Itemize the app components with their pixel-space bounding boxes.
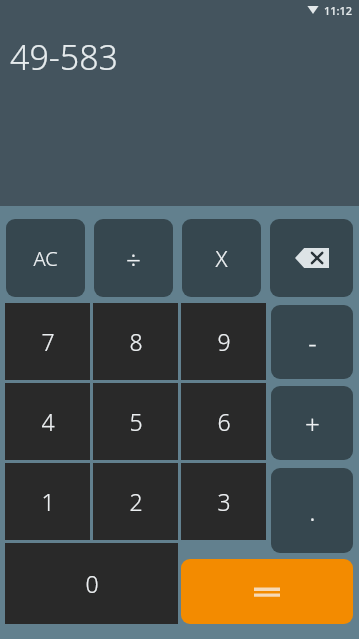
staticText: X — [215, 243, 228, 273]
staticText: 49-583 — [10, 34, 119, 80]
staticText: 6 — [217, 406, 231, 437]
button[interactable]: ÷ — [94, 219, 173, 297]
staticText: AC — [33, 245, 58, 272]
button[interactable]: X — [182, 219, 261, 297]
button[interactable]: Backspace — [270, 219, 353, 297]
staticText: 0 — [85, 568, 99, 599]
staticText: 8 — [129, 326, 143, 357]
button[interactable]: 3 — [181, 463, 266, 540]
button[interactable]: 4 — [5, 383, 90, 460]
button[interactable]: 5 — [93, 383, 178, 460]
button[interactable]: 7 — [5, 303, 90, 380]
staticText: 3 — [217, 486, 231, 517]
button[interactable]: - — [271, 305, 353, 379]
button[interactable] — [181, 559, 353, 624]
staticText: - — [308, 325, 317, 360]
button[interactable]: 0 — [5, 543, 178, 624]
button[interactable]: + — [271, 386, 353, 460]
button[interactable]: 9 — [181, 303, 266, 380]
staticText: 1 — [41, 486, 55, 517]
button[interactable]: 8 — [93, 303, 178, 380]
button[interactable]: 2 — [93, 463, 178, 540]
button[interactable]: . — [271, 468, 353, 553]
staticText: 5 — [129, 406, 143, 437]
staticText: 9 — [217, 326, 231, 357]
staticText: 11:12 — [324, 3, 353, 18]
staticText: ÷ — [126, 241, 141, 276]
staticText: . — [309, 493, 316, 528]
staticText: + — [305, 406, 320, 441]
staticText: 4 — [41, 406, 55, 437]
button[interactable]: 1 — [5, 463, 90, 540]
button[interactable]: 6 — [181, 383, 266, 460]
button[interactable]: AC — [6, 219, 85, 297]
staticText: 2 — [129, 486, 143, 517]
staticText: 7 — [41, 326, 55, 357]
